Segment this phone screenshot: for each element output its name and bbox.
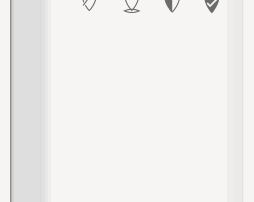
button[interactable]: Protection off (0, 0, 254, 202)
button[interactable]: Partial protection (0, 0, 254, 202)
button[interactable]: Scan (0, 0, 254, 202)
button[interactable]: Protected (0, 0, 254, 202)
